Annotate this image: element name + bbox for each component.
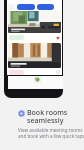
button[interactable]: Favourite <box>56 70 60 74</box>
button[interactable] <box>17 4 35 10</box>
button[interactable] <box>8 11 61 33</box>
button[interactable]: Meeting room <box>18 110 25 117</box>
staticText: Book rooms seamlessly <box>27 108 68 125</box>
button[interactable] <box>37 4 54 10</box>
button[interactable] <box>8 43 61 68</box>
button[interactable] <box>9 35 24 40</box>
staticText: View available meeting rooms and book wi… <box>18 127 84 139</box>
button[interactable]: Favourite <box>56 36 60 40</box>
button[interactable] <box>8 76 63 89</box>
button[interactable] <box>9 70 24 75</box>
